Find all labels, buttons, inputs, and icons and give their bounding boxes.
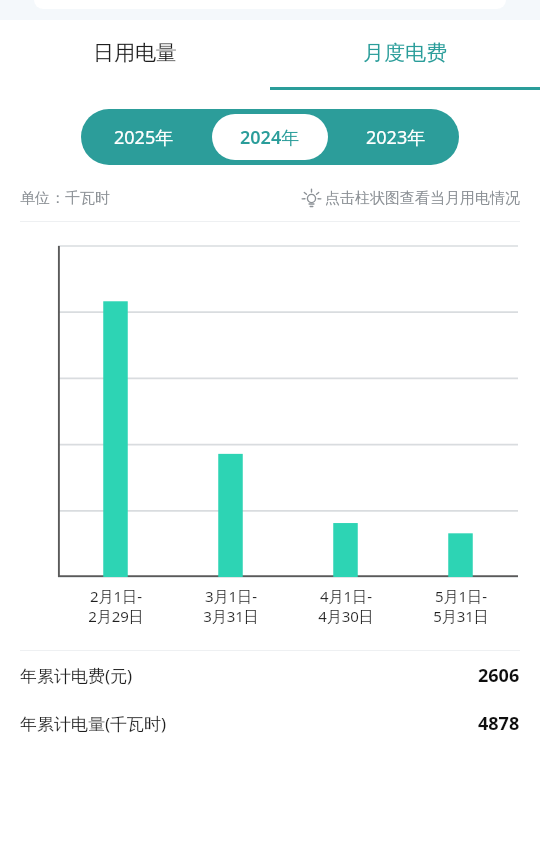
staticText: 年累计电量(千瓦时) [20, 712, 167, 735]
button[interactable]: 年累计电量(千瓦时) [0, 699, 540, 747]
button[interactable]: 月度电费 [270, 20, 540, 98]
button[interactable]: 4月1日- [288, 586, 403, 626]
button[interactable]: 5月1日- [403, 586, 518, 626]
staticText: 2023年 [366, 125, 426, 150]
staticText: 2024年 [240, 125, 300, 150]
staticText: 点击柱状图查看当月用电情况 [325, 189, 520, 208]
staticText: 月度电费 [363, 40, 447, 66]
staticText: 单位：千瓦时 [20, 189, 110, 208]
staticText: 2月1日- [90, 586, 142, 606]
button[interactable]: 年累计电费(元) [0, 651, 540, 699]
button[interactable]: 2023年 [338, 114, 454, 160]
staticText: 5月1日- [435, 586, 487, 606]
button[interactable]: 2月1日- [58, 586, 173, 626]
staticText: 年累计电费(元) [20, 664, 133, 687]
button[interactable]: 2024年 [212, 114, 328, 160]
staticText: 4月30日 [318, 606, 374, 626]
button[interactable]: 提示 [302, 189, 520, 208]
button[interactable]: 3月1日- [173, 586, 288, 626]
button[interactable]: 日用电量 [0, 20, 270, 98]
staticText: 2月29日 [88, 606, 144, 626]
staticText: 2025年 [114, 125, 174, 150]
staticText: 4月1日- [320, 586, 372, 606]
staticText: 2606 [478, 663, 520, 688]
staticText: 4878 [478, 711, 520, 736]
button[interactable]: 2025年 [86, 114, 202, 160]
staticText: 3月1日- [205, 586, 257, 606]
other: 提示 [302, 189, 321, 208]
staticText: 5月31日 [433, 606, 489, 626]
staticText: 3月31日 [203, 606, 259, 626]
staticText: 日用电量 [93, 40, 177, 66]
